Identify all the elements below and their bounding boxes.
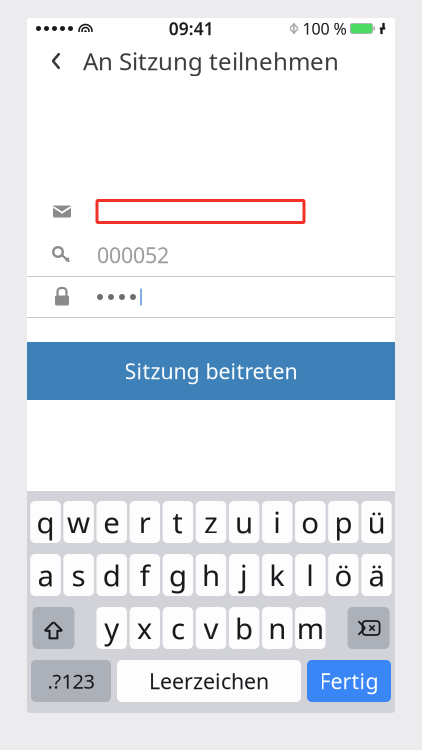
staticText: k (269, 555, 285, 594)
button[interactable]: m (295, 607, 325, 649)
staticText: r (139, 502, 151, 541)
button[interactable]: r (130, 501, 160, 543)
button[interactable]: ö (328, 554, 359, 596)
button[interactable]: h (196, 554, 226, 596)
button[interactable]: z (196, 501, 226, 543)
button[interactable]: l (295, 554, 326, 596)
staticText: w (67, 502, 90, 541)
button[interactable]: n (262, 607, 292, 649)
staticText: t (172, 502, 183, 541)
button[interactable]: v (196, 607, 226, 649)
staticText: ä (368, 555, 384, 594)
staticText: i (273, 502, 281, 541)
staticText: ü (367, 502, 385, 541)
staticText: j (240, 555, 248, 594)
staticText: x (137, 608, 153, 647)
staticText: Fertig (319, 667, 378, 695)
button[interactable]: d (96, 554, 127, 596)
staticText: 09:41 (169, 17, 214, 40)
button[interactable]: t (163, 501, 193, 543)
button[interactable]: o (295, 501, 326, 543)
staticText: Sitzung beitreten (124, 357, 297, 385)
button[interactable]: Löschen (348, 607, 390, 649)
button[interactable]: q (30, 501, 61, 543)
staticText: l (306, 555, 314, 594)
button[interactable]: .?123 (31, 660, 111, 702)
button[interactable]: f (130, 554, 160, 596)
staticText: d (103, 555, 121, 594)
button[interactable]: ü (361, 501, 392, 543)
staticText: a (37, 555, 53, 594)
staticText: m (297, 608, 324, 647)
staticText: u (235, 502, 253, 541)
button[interactable]: u (229, 501, 259, 543)
button[interactable]: i (262, 501, 292, 543)
button[interactable]: j (229, 554, 259, 596)
button[interactable] (27, 189, 395, 234)
button[interactable]: k (262, 554, 292, 596)
button[interactable]: Leerzeichen (117, 660, 301, 702)
button[interactable]: g (163, 554, 193, 596)
button[interactable]: Sitzung beitreten (27, 342, 395, 400)
button[interactable]: e (96, 501, 127, 543)
staticText: An Sitzung teilnehmen (83, 45, 339, 77)
staticText: q (36, 502, 54, 541)
staticText: Leerzeichen (149, 667, 269, 695)
button[interactable]: w (63, 501, 94, 543)
staticText: f (140, 555, 150, 594)
staticText: .?123 (47, 668, 94, 694)
staticText: p (334, 502, 352, 541)
staticText: o (301, 502, 319, 541)
button[interactable]: s (63, 554, 94, 596)
button[interactable]: ä (361, 554, 392, 596)
button[interactable]: y (96, 607, 127, 649)
staticText: e (103, 502, 120, 541)
staticText: 000052 (97, 241, 169, 269)
staticText: s (72, 555, 86, 594)
staticText: c (171, 608, 185, 647)
button[interactable] (27, 277, 395, 317)
staticText: y (104, 608, 119, 647)
staticText: z (204, 502, 218, 541)
button[interactable]: Fertig (307, 660, 391, 702)
button[interactable]: x (129, 607, 160, 649)
button[interactable]: b (229, 607, 259, 649)
button[interactable]: c (163, 607, 193, 649)
staticText: b (235, 608, 253, 647)
staticText: ö (334, 555, 352, 594)
staticText: n (268, 608, 286, 647)
staticText: v (203, 608, 218, 647)
button[interactable]: p (328, 501, 359, 543)
staticText: h (202, 555, 220, 594)
button[interactable]: Umschalt (32, 607, 74, 649)
staticText: g (169, 555, 187, 594)
button[interactable]: Zurück (34, 39, 78, 83)
button[interactable]: 000052 (27, 234, 395, 276)
staticText: 100 % (302, 18, 346, 39)
button[interactable]: a (30, 554, 61, 596)
